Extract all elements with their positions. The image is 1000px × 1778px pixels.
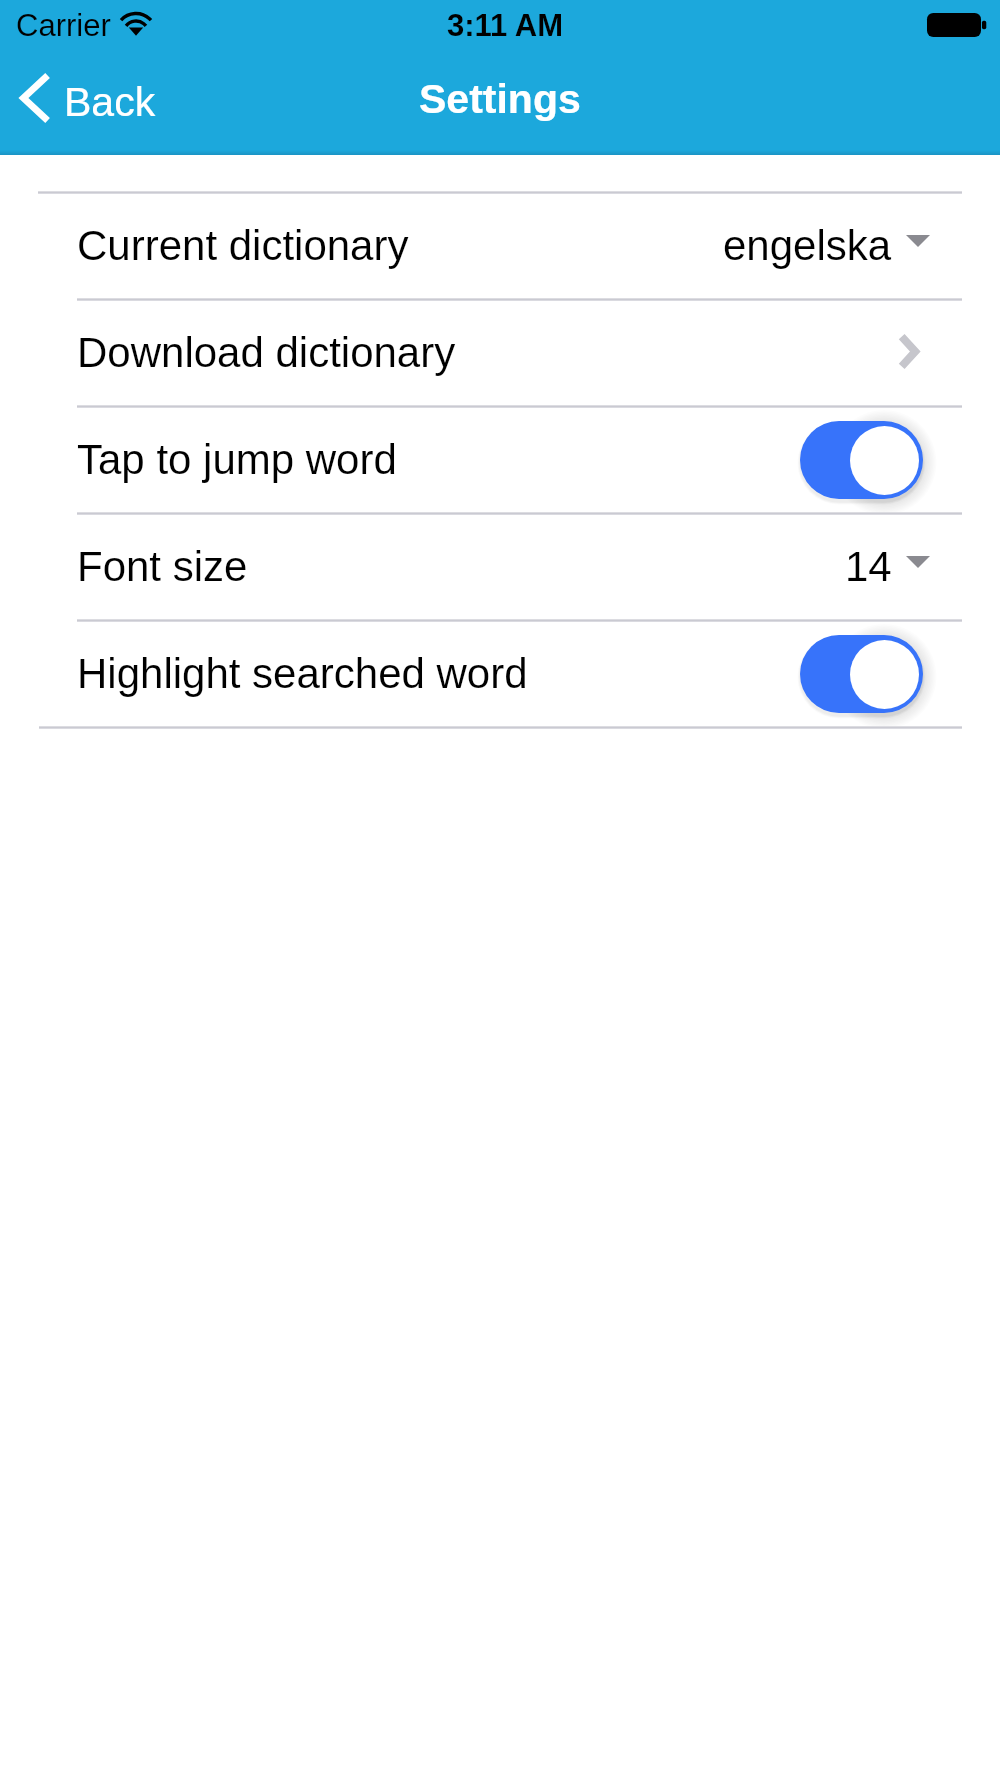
- button[interactable]: Current dictionary: [0, 194, 1000, 298]
- button[interactable]: Tap to jump word, on: [788, 409, 935, 511]
- staticText: 3:11 AM: [447, 8, 564, 43]
- other: Back: [20, 72, 51, 124]
- staticText: Download dictionary: [77, 329, 456, 376]
- staticText: Back: [64, 79, 156, 125]
- staticText: Font size: [77, 543, 248, 590]
- staticText: Highlight searched word: [77, 650, 528, 697]
- staticText: Current dictionary: [77, 222, 409, 269]
- staticText: Carrier: [16, 8, 111, 43]
- button[interactable]: Tap to jump word: [0, 408, 1000, 512]
- other: Open download dictionary: [897, 332, 920, 371]
- button[interactable]: Highlight searched word: [0, 622, 1000, 726]
- button[interactable]: Download dictionary: [0, 301, 1000, 405]
- staticText: 14: [845, 543, 892, 590]
- button[interactable]: Font size: [0, 515, 1000, 619]
- staticText: engelska: [723, 222, 892, 269]
- staticText: Settings: [419, 76, 581, 122]
- staticText: Tap to jump word: [77, 436, 397, 483]
- button[interactable]: Highlight searched word, on: [788, 623, 935, 725]
- button[interactable]: Back: [0, 64, 170, 134]
